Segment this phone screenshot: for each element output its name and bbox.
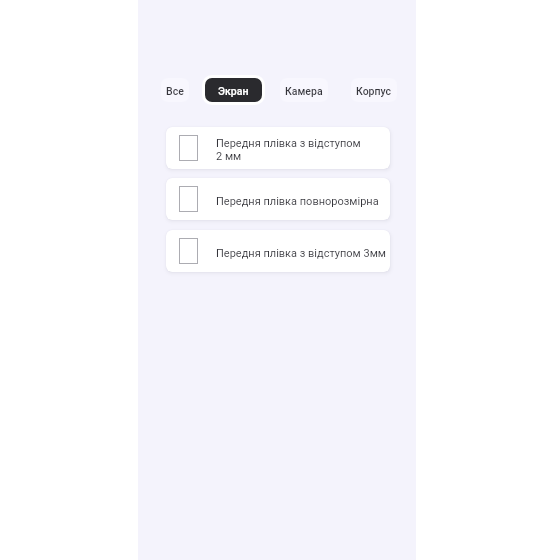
button[interactable]: Передня плівка повнорозмірна bbox=[166, 178, 390, 220]
staticText: Все bbox=[166, 85, 184, 97]
button[interactable]: Передня плівка з відступом 3мм bbox=[166, 230, 390, 272]
staticText: Экран bbox=[218, 85, 249, 97]
button[interactable]: Камера bbox=[280, 78, 328, 102]
staticText: Передня плівка з відступом 3мм bbox=[216, 247, 386, 260]
button[interactable]: Все bbox=[161, 78, 189, 102]
staticText: Передня плівка повнорозмірна bbox=[216, 195, 379, 208]
staticText: Корпус bbox=[356, 85, 392, 97]
button[interactable]: Корпус bbox=[351, 78, 397, 102]
button[interactable]: Экран bbox=[202, 75, 265, 105]
staticText: Передня плівка з відступом 2 мм bbox=[216, 137, 361, 163]
button[interactable]: Передня плівка з відступом 2 мм bbox=[166, 127, 390, 169]
staticText: Камера bbox=[285, 85, 323, 97]
